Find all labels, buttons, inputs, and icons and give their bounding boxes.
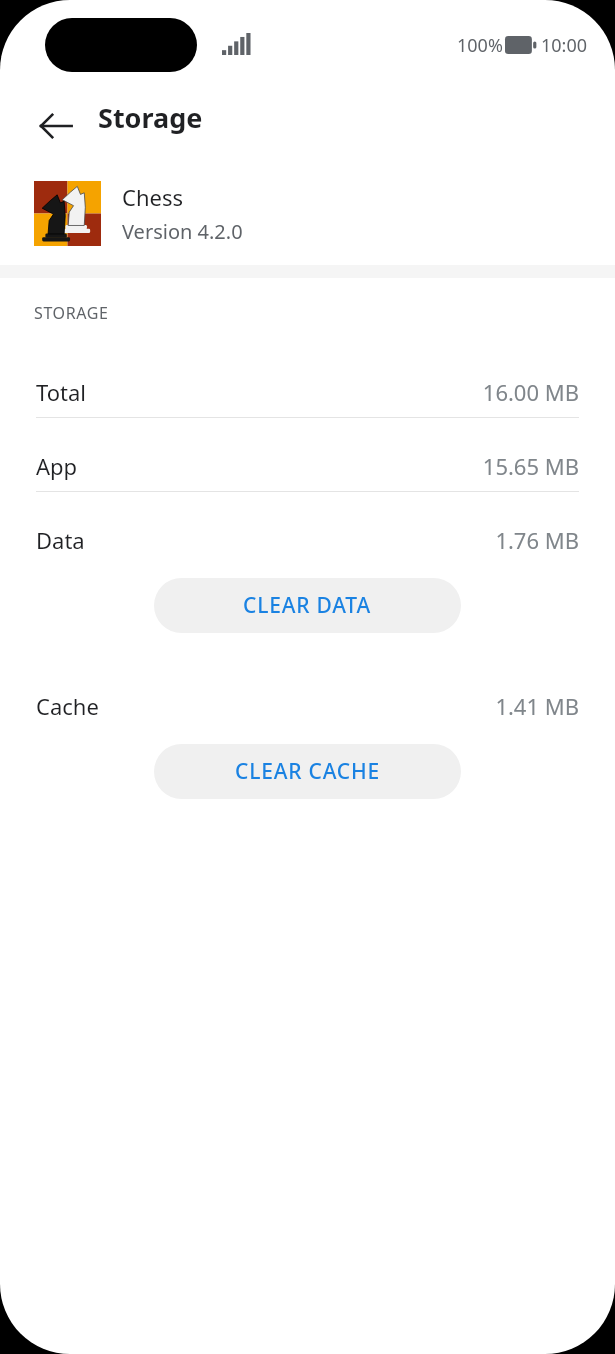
staticText: Storage: [98, 99, 203, 136]
staticText: Data: [36, 525, 85, 555]
staticText: Total: [36, 377, 86, 407]
staticText: 10:00: [541, 33, 588, 58]
staticText: STORAGE: [34, 302, 109, 324]
button[interactable]: Cache: [0, 680, 615, 731]
button[interactable]: Chess: [0, 170, 615, 256]
staticText: Chess: [122, 182, 183, 212]
button[interactable]: CLEAR DATA: [154, 578, 461, 633]
staticText: Cache: [36, 691, 99, 721]
staticText: 1.41 MB: [495, 691, 579, 721]
staticText: 16.00 MB: [482, 377, 579, 407]
button[interactable]: App: [0, 440, 615, 491]
button[interactable]: Total: [0, 366, 615, 417]
staticText: 100%: [457, 33, 503, 58]
button[interactable]: CLEAR CACHE: [154, 744, 461, 799]
staticText: Version 4.2.0: [122, 218, 243, 245]
staticText: CLEAR CACHE: [235, 757, 380, 786]
staticText: 1.76 MB: [495, 525, 579, 555]
button[interactable]: Data: [0, 514, 615, 565]
staticText: 15.65 MB: [482, 451, 579, 481]
staticText: CLEAR DATA: [243, 591, 372, 620]
button[interactable]: Back: [24, 94, 88, 158]
staticText: App: [36, 451, 78, 481]
